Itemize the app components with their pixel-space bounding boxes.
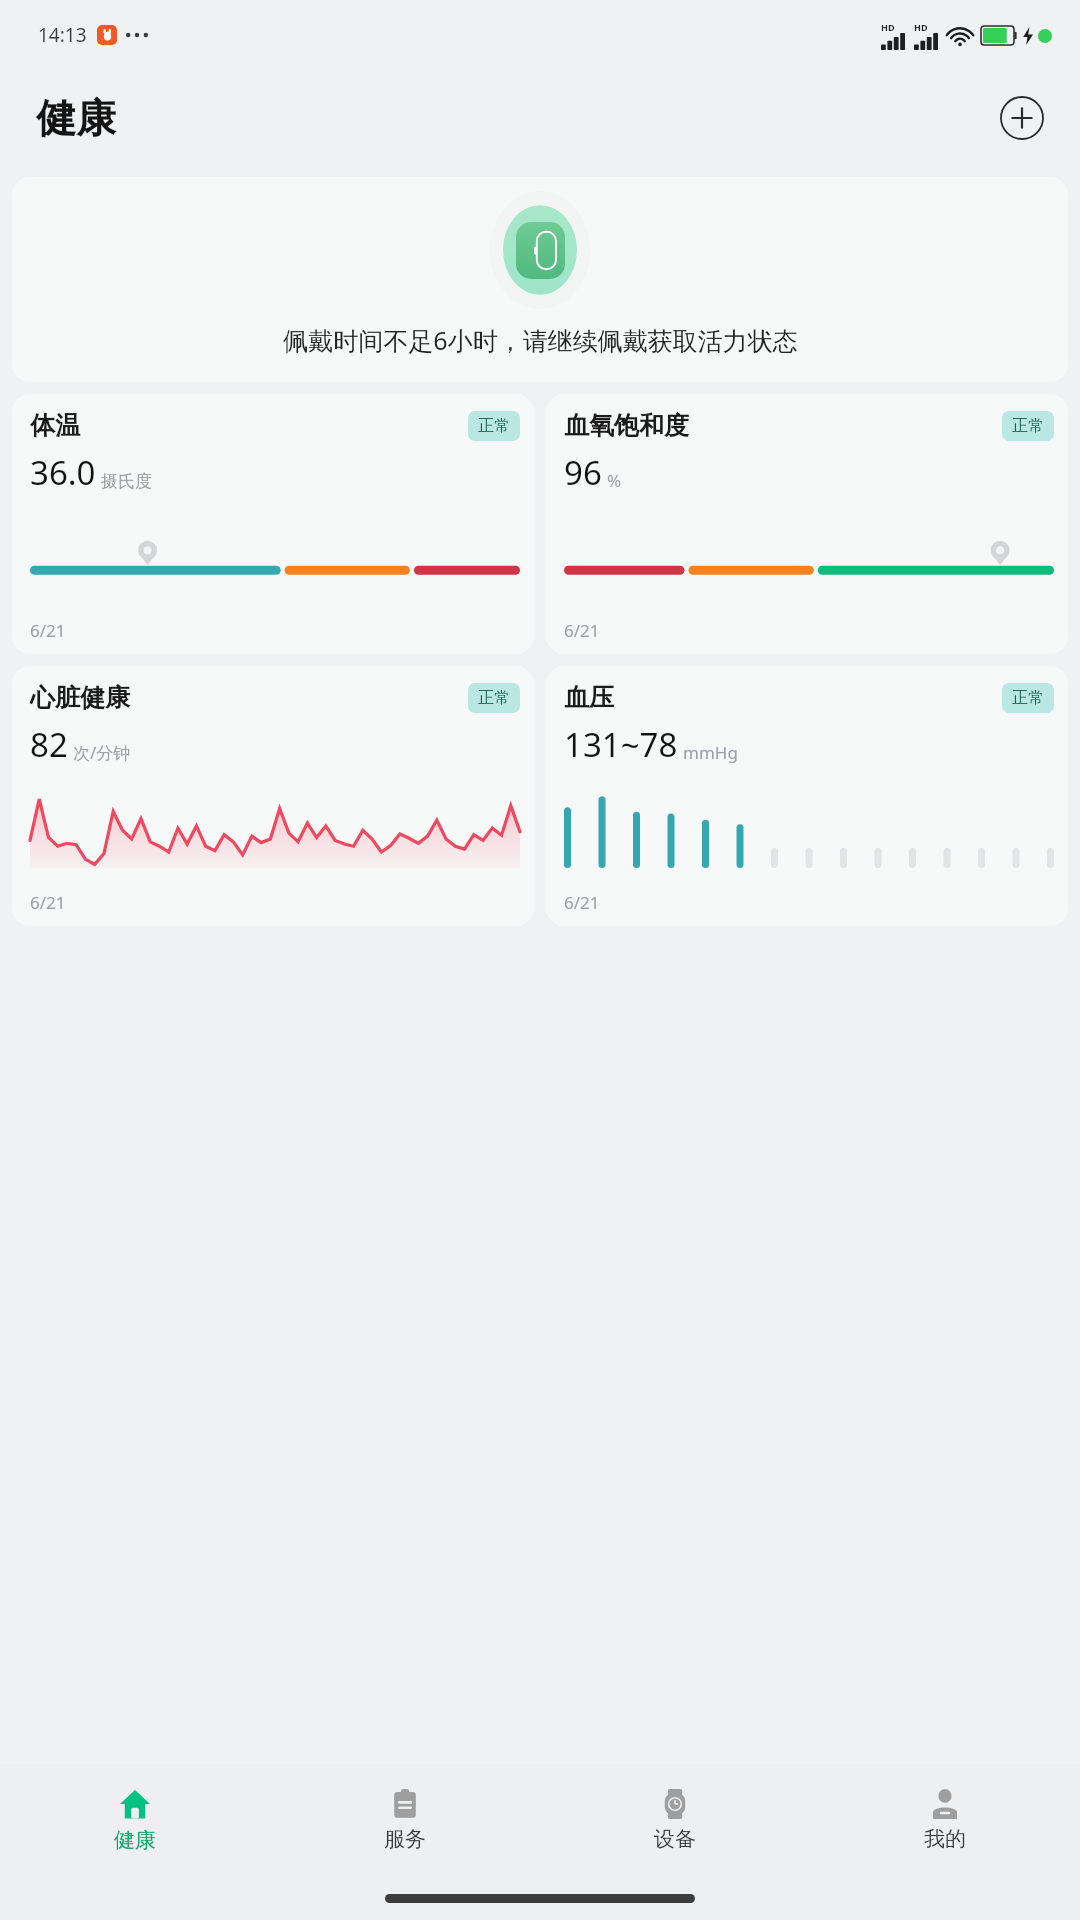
staticText: 6/21 bbox=[30, 619, 66, 642]
staticText: 体温 bbox=[30, 410, 80, 441]
button[interactable]: 健康 bbox=[0, 1764, 270, 1876]
button[interactable]: 血氧饱和度 bbox=[546, 394, 1068, 654]
staticText: 正常 bbox=[1012, 416, 1044, 436]
button[interactable]: 设备 bbox=[540, 1764, 810, 1876]
staticText: 6/21 bbox=[564, 619, 600, 642]
staticText: 我的 bbox=[924, 1826, 966, 1852]
staticText: 血氧饱和度 bbox=[564, 410, 689, 441]
button[interactable]: 体温 bbox=[12, 394, 534, 654]
staticText: HD bbox=[914, 21, 928, 33]
staticText: 摄氏度 bbox=[101, 471, 152, 492]
staticText: 健康 bbox=[36, 93, 116, 143]
staticText: % bbox=[607, 469, 622, 492]
staticText: 正常 bbox=[478, 688, 510, 708]
staticText: mmHg bbox=[683, 741, 738, 764]
staticText: HD bbox=[881, 21, 895, 33]
staticText: 正常 bbox=[478, 416, 510, 436]
staticText: 14:13 bbox=[38, 22, 87, 48]
button[interactable]: 心脏健康 bbox=[12, 666, 534, 926]
button[interactable]: 服务 bbox=[270, 1764, 540, 1876]
staticText: 佩戴时间不足6小时，请继续佩戴获取活力状态 bbox=[283, 323, 798, 357]
button[interactable]: 血压 bbox=[546, 666, 1068, 926]
staticText: 血压 bbox=[564, 682, 614, 713]
staticText: 36.0 bbox=[30, 450, 96, 495]
staticText: 健康 bbox=[114, 1827, 156, 1853]
staticText: 服务 bbox=[384, 1826, 426, 1852]
button[interactable]: 佩戴时间不足6小时，请继续佩戴获取活力状态 bbox=[12, 177, 1068, 382]
staticText: 次/分钟 bbox=[73, 741, 131, 764]
staticText: 6/21 bbox=[30, 891, 66, 914]
staticText: 96 bbox=[564, 450, 602, 495]
staticText: 设备 bbox=[654, 1826, 696, 1852]
staticText: 82 bbox=[30, 722, 68, 767]
staticText: 131~78 bbox=[564, 722, 678, 767]
button[interactable]: Add bbox=[1000, 96, 1044, 140]
staticText: 心脏健康 bbox=[30, 682, 130, 713]
button[interactable]: 我的 bbox=[810, 1764, 1080, 1876]
staticText: 正常 bbox=[1012, 688, 1044, 708]
staticText: 6/21 bbox=[564, 891, 600, 914]
